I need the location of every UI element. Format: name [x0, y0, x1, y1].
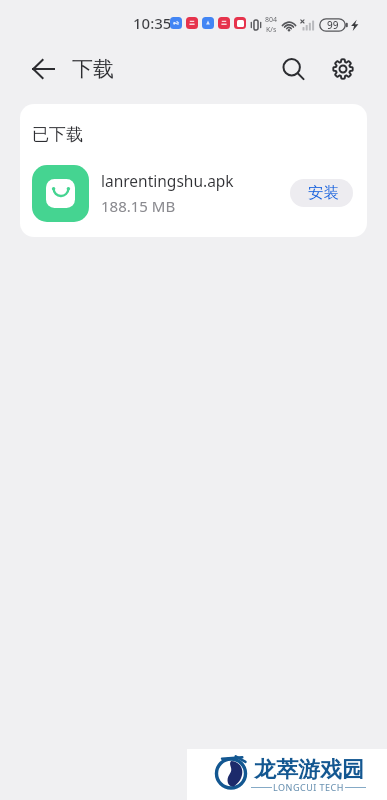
staticText: 188.15 MB [101, 196, 176, 216]
staticText: 99 [327, 18, 339, 32]
staticText: LONGCUI TECH [273, 781, 344, 793]
staticText: 10:35 [133, 13, 172, 33]
staticText: 804 [265, 15, 278, 25]
staticText: 已下载 [32, 124, 83, 145]
staticText: K/s [266, 25, 277, 35]
button[interactable]: Back [21, 47, 66, 91]
staticText: lanrentingshu.apk [101, 170, 234, 191]
staticText: 下载 [72, 56, 114, 82]
button[interactable]: lanrentingshu.apk [20, 156, 367, 231]
staticText: 安装 [308, 183, 339, 203]
button[interactable]: Settings [320, 47, 365, 91]
staticText: 龙萃游戏园 [254, 756, 364, 784]
button[interactable]: Search [270, 47, 315, 91]
button[interactable]: 安装 [290, 179, 353, 207]
